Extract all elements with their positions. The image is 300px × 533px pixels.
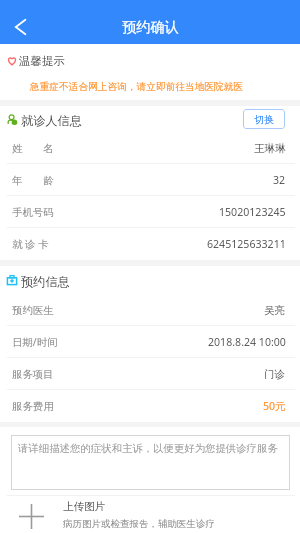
staticText: 手机号码 <box>12 206 54 219</box>
staticText: 15020123245 <box>219 205 286 219</box>
staticText: 切换 <box>254 113 274 126</box>
button[interactable]: 切换 <box>243 109 285 129</box>
staticText: 预约医生 <box>12 304 54 317</box>
staticText: 姓 名 <box>12 141 54 155</box>
staticText: 2018.8.24 10:00 <box>208 335 286 349</box>
staticText: 日期/时间 <box>12 335 58 349</box>
button[interactable]: 手机号码 <box>0 196 300 228</box>
staticText: 服务项目 <box>12 368 54 381</box>
button[interactable]: 年 龄 <box>0 164 300 196</box>
staticText: 上传图片 <box>63 500 106 513</box>
button[interactable]: 日期/时间 <box>0 326 300 358</box>
button[interactable]: 服务费用 <box>0 390 300 422</box>
staticText: 门诊 <box>264 368 286 381</box>
staticText: 50元 <box>263 399 286 413</box>
staticText: 服务费用 <box>12 400 54 413</box>
staticText: 病历图片或检查报告，辅助医生诊疗 <box>63 518 215 530</box>
button[interactable]: 上传图片 <box>0 496 300 533</box>
staticText: 预约信息 <box>21 274 70 289</box>
staticText: 急重症不适合网上咨询，请立即前往当地医院就医 <box>30 81 244 93</box>
button[interactable]: 就 诊 卡 <box>0 228 300 260</box>
staticText: 就诊人信息 <box>21 113 82 128</box>
staticText: 预约确认 <box>122 18 179 36</box>
staticText: 6245125633211 <box>207 237 286 251</box>
button[interactable]: 服务项目 <box>0 358 300 390</box>
button[interactable]: 请详细描述您的症状和主诉，以便更好为您提供诊疗服务 <box>11 435 290 490</box>
button[interactable]: 预约医生 <box>0 294 300 326</box>
staticText: 年 龄 <box>12 173 54 187</box>
staticText: 温馨提示 <box>19 54 65 68</box>
staticText: 请详细描述您的症状和主诉，以便更好为您提供诊疗服务 <box>18 442 278 455</box>
staticText: 吴亮 <box>264 304 286 317</box>
button[interactable]: 姓 名 <box>0 132 300 164</box>
staticText: 就 诊 卡 <box>12 237 49 251</box>
staticText: 32 <box>273 173 286 187</box>
button[interactable]: Back <box>0 0 41 44</box>
staticText: 王琳琳 <box>254 142 286 155</box>
